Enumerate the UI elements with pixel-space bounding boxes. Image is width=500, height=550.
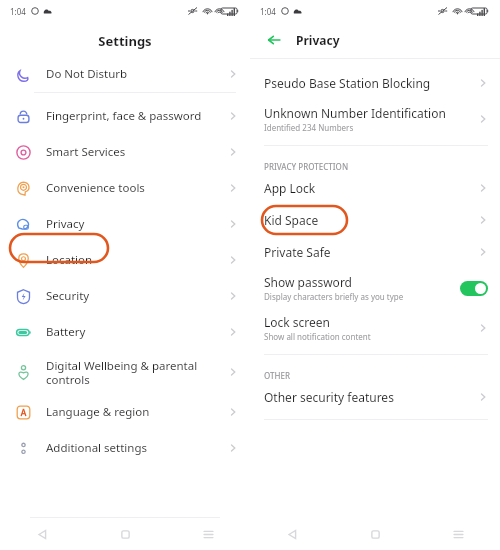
staticText: Additional settings	[46, 440, 228, 456]
button[interactable]: Do Not Disturb	[0, 56, 250, 92]
button[interactable]: Language & region	[0, 394, 250, 430]
staticText: Location	[46, 252, 228, 268]
button[interactable]: Smart Services	[0, 134, 250, 170]
staticText: Language & region	[46, 404, 228, 420]
button[interactable]: Battery	[0, 314, 250, 350]
staticText: Battery	[46, 324, 228, 340]
button[interactable]: Home	[334, 518, 417, 550]
staticText: Security	[46, 288, 228, 304]
button[interactable]: Show password	[250, 268, 500, 308]
staticText: Unknown Number Identification	[264, 105, 446, 121]
button[interactable]: Security	[0, 278, 250, 314]
button[interactable]: Convenience tools	[0, 170, 250, 206]
button[interactable]: Kid Space	[250, 204, 500, 236]
staticText: Show password	[264, 274, 352, 290]
button[interactable]: Show password toggle	[460, 281, 488, 296]
staticText: PRIVACY PROTECTION	[264, 161, 349, 172]
button[interactable]: Back	[0, 518, 84, 550]
button[interactable]: Recents	[167, 518, 250, 550]
button[interactable]: Additional settings	[0, 430, 250, 466]
staticText: Settings	[98, 32, 152, 50]
staticText: Display characters briefly as you type	[264, 291, 404, 302]
staticText: Private Safe	[264, 244, 331, 260]
button[interactable]: Lock screen	[250, 308, 500, 348]
staticText: Kid Space	[264, 212, 319, 228]
button[interactable]: Back	[264, 30, 284, 50]
button[interactable]: Unknown Number Identification	[250, 99, 500, 139]
button[interactable]: Other security features	[250, 381, 500, 413]
button[interactable]: Back	[250, 518, 334, 550]
staticText: Identified 234 Numbers	[264, 122, 354, 133]
staticText: 1:04	[260, 6, 276, 17]
button[interactable]: Private Safe	[250, 236, 500, 268]
button[interactable]: Recents	[417, 518, 500, 550]
staticText: Privacy	[296, 32, 340, 48]
button[interactable]: App Lock	[250, 172, 500, 204]
staticText: Digital Wellbeing & parental controls	[46, 358, 228, 387]
staticText: App Lock	[264, 180, 316, 196]
staticText: Fingerprint, face & password	[46, 108, 228, 124]
staticText: OTHER	[264, 370, 291, 381]
button[interactable]: Privacy	[0, 206, 250, 242]
staticText: Do Not Disturb	[46, 66, 228, 82]
button[interactable]: Home	[84, 518, 167, 550]
staticText: Convenience tools	[46, 180, 228, 196]
button[interactable]: Pseudo Base Station Blocking	[250, 67, 500, 99]
button[interactable]: Digital Wellbeing & parental controls	[0, 350, 250, 394]
staticText: Pseudo Base Station Blocking	[264, 75, 431, 91]
staticText: Show all notification content	[264, 331, 371, 342]
staticText: Other security features	[264, 389, 394, 405]
staticText: Smart Services	[46, 144, 228, 160]
button[interactable]: Fingerprint, face & password	[0, 98, 250, 134]
staticText: 1:04	[10, 6, 26, 17]
staticText: Lock screen	[264, 314, 331, 330]
button[interactable]: Location	[0, 242, 250, 278]
staticText: Privacy	[46, 216, 228, 232]
